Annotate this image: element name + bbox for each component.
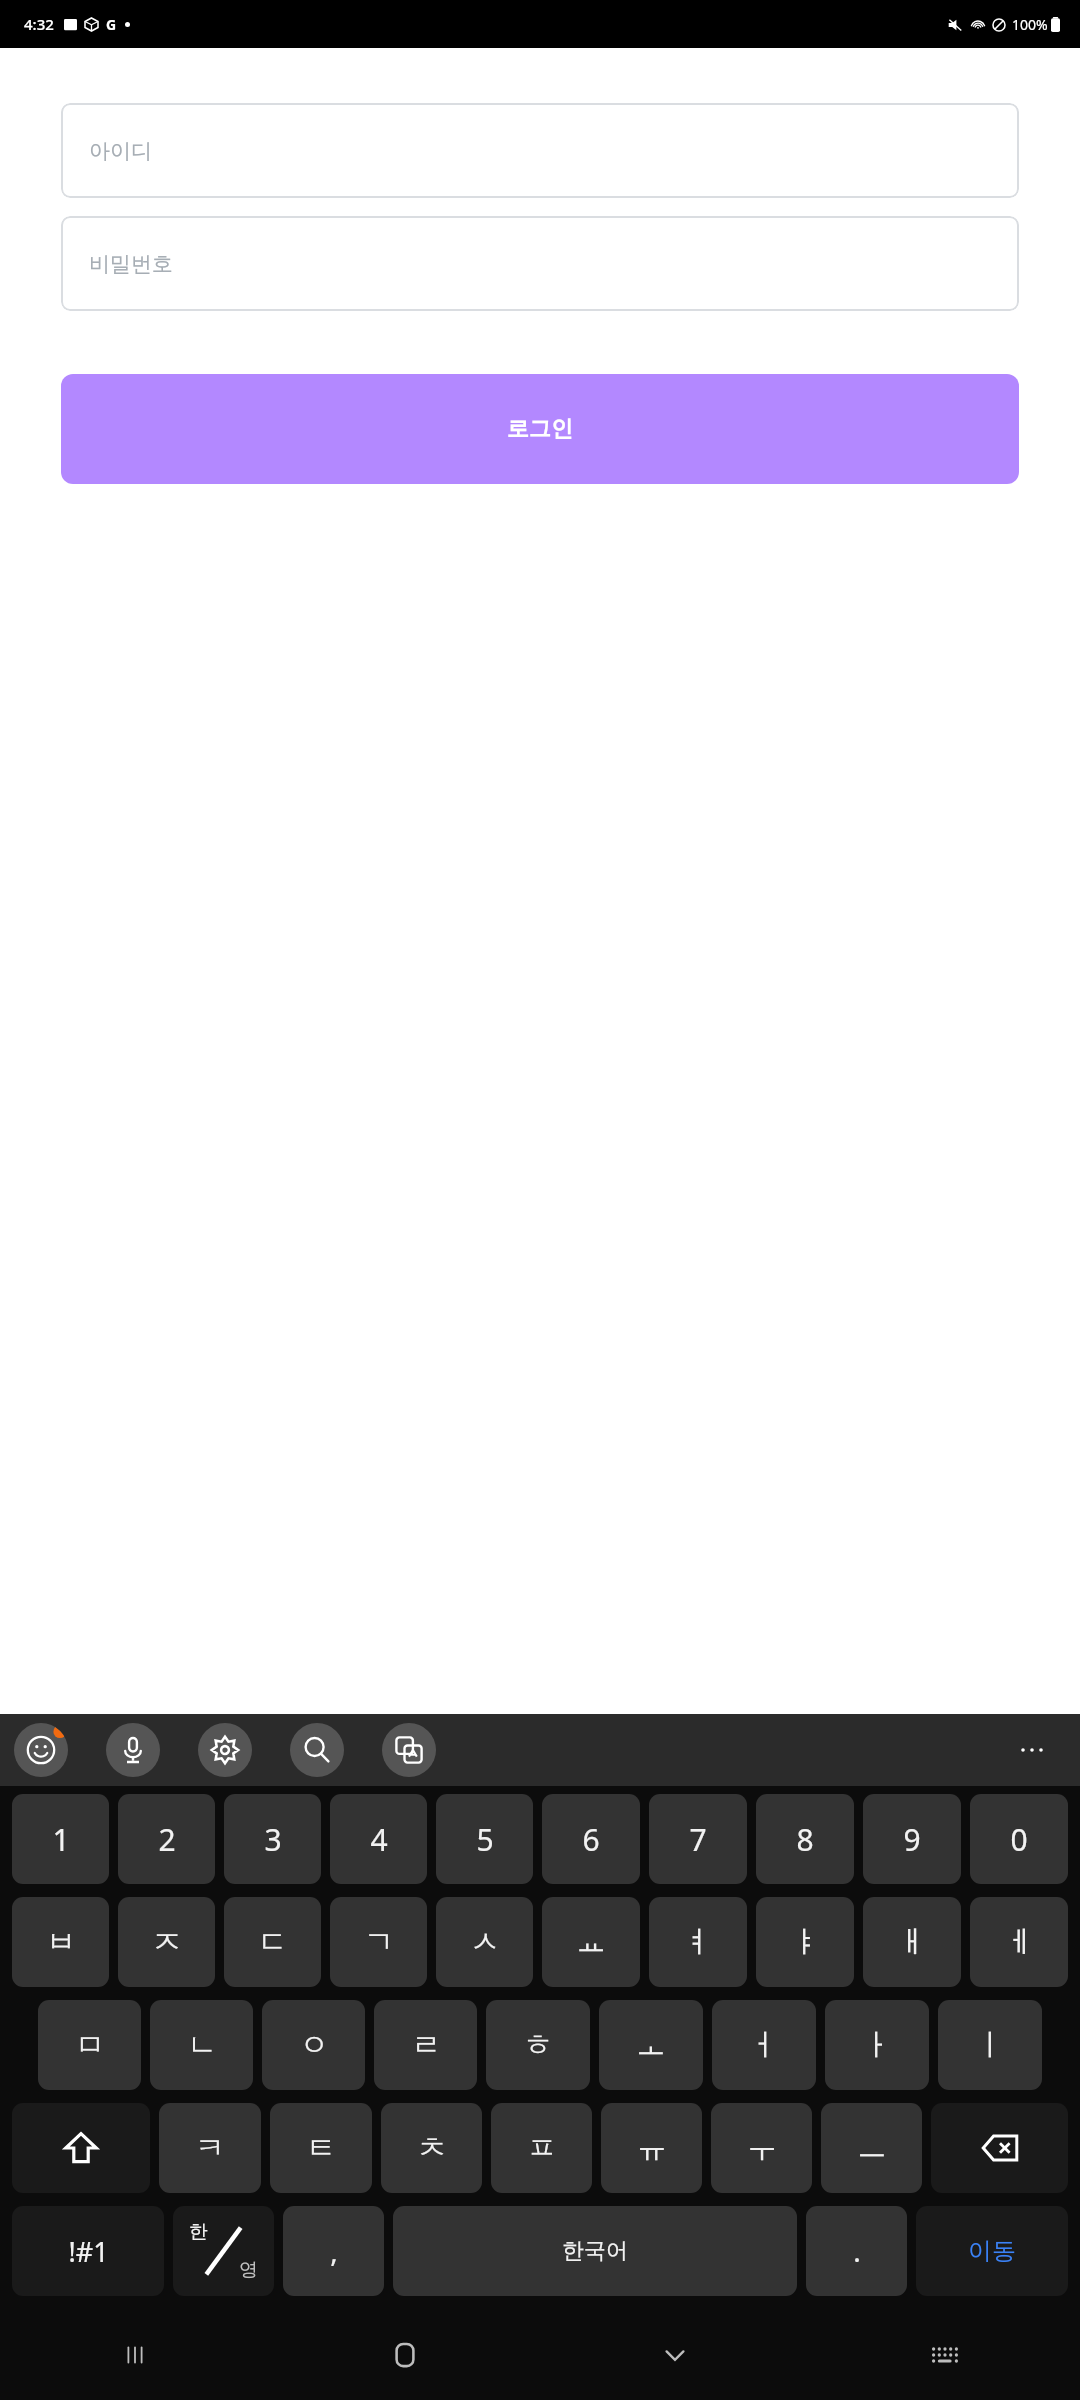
button[interactable]: Emoji	[14, 1723, 68, 1777]
staticText: ,	[330, 2232, 338, 2270]
staticText: 100%	[1012, 15, 1048, 34]
button[interactable]: ㅇ	[262, 2000, 365, 2090]
staticText: ㅏ	[862, 2026, 892, 2064]
button[interactable]: Voice input	[106, 1723, 160, 1777]
staticText: ㅣ	[975, 2026, 1005, 2064]
button[interactable]: 로그인	[61, 374, 1019, 484]
button[interactable]: 한국어	[393, 2206, 797, 2296]
staticText: ㅂ	[46, 1923, 76, 1961]
staticText: ㅓ	[749, 2026, 779, 2064]
button[interactable]: Shift	[12, 2103, 150, 2193]
button[interactable]: ㄷ	[224, 1897, 321, 1987]
button[interactable]: ㅌ	[270, 2103, 372, 2193]
staticText: ㅇ	[299, 2026, 329, 2064]
button[interactable]: 이동	[916, 2206, 1068, 2296]
staticText: !#1	[68, 2233, 109, 2270]
button[interactable]: ㅈ	[118, 1897, 215, 1987]
staticText: ㅋ	[195, 2129, 225, 2167]
staticText: 4:32	[24, 14, 54, 34]
staticText: 한국어	[562, 2237, 628, 2265]
staticText: 5	[476, 1819, 494, 1860]
button[interactable]: 9	[863, 1794, 961, 1884]
staticText: 0	[1010, 1819, 1028, 1860]
staticText: 6	[582, 1819, 600, 1860]
staticText: 한	[189, 2220, 208, 2244]
button[interactable]: ㅎ	[486, 2000, 590, 2090]
button[interactable]: 5	[436, 1794, 533, 1884]
button[interactable]: ㅊ	[381, 2103, 482, 2193]
staticText: ㄱ	[364, 1923, 394, 1961]
button[interactable]: ㄱ	[330, 1897, 427, 1987]
button[interactable]: 8	[756, 1794, 854, 1884]
button[interactable]: ㅣ	[938, 2000, 1042, 2090]
staticText: ㅁ	[75, 2026, 105, 2064]
staticText: ㅛ	[576, 1923, 606, 1961]
button[interactable]: .	[806, 2206, 907, 2296]
button[interactable]: Backspace	[931, 2103, 1068, 2193]
button[interactable]: 1	[12, 1794, 109, 1884]
button[interactable]: Hide keyboard	[540, 2310, 810, 2400]
button[interactable]: ㅂ	[12, 1897, 109, 1987]
staticText: 영	[239, 2258, 258, 2282]
staticText: ㅅ	[470, 1923, 500, 1961]
staticText: ㅌ	[306, 2129, 336, 2167]
staticText: 4	[370, 1819, 388, 1860]
button[interactable]: ,	[283, 2206, 384, 2296]
button[interactable]: Recents	[0, 2310, 270, 2400]
button[interactable]: !#1	[12, 2206, 164, 2296]
button[interactable]: ㅛ	[542, 1897, 640, 1987]
button[interactable]: Translate	[382, 1723, 436, 1777]
staticText: 9	[903, 1819, 921, 1860]
button[interactable]: 비밀번호	[61, 216, 1019, 311]
staticText: ㅐ	[897, 1923, 927, 1961]
staticText: ㄹ	[411, 2026, 441, 2064]
staticText: 2	[158, 1819, 176, 1860]
button[interactable]: More options	[1008, 1726, 1056, 1774]
button[interactable]: ㅓ	[712, 2000, 816, 2090]
button[interactable]: ㅏ	[825, 2000, 929, 2090]
button[interactable]: ㅡ	[821, 2103, 922, 2193]
button[interactable]: ㅑ	[756, 1897, 854, 1987]
button[interactable]: ㅍ	[491, 2103, 592, 2193]
button[interactable]: Settings	[198, 1723, 252, 1777]
staticText: ㅠ	[637, 2129, 667, 2167]
staticText: ㅔ	[1004, 1923, 1034, 1961]
button[interactable]: ㅐ	[863, 1897, 961, 1987]
staticText: ㅈ	[152, 1923, 182, 1961]
staticText: 3	[264, 1819, 282, 1860]
button[interactable]: ㄹ	[374, 2000, 477, 2090]
button[interactable]: 6	[542, 1794, 640, 1884]
button[interactable]: ㅕ	[649, 1897, 747, 1987]
button[interactable]: 4	[330, 1794, 427, 1884]
button[interactable]: ㅁ	[38, 2000, 141, 2090]
button[interactable]: ㄴ	[150, 2000, 253, 2090]
button[interactable]: Home	[270, 2310, 540, 2400]
button[interactable]: ㅔ	[970, 1897, 1068, 1987]
staticText: ㅎ	[523, 2026, 553, 2064]
staticText: G	[106, 15, 117, 34]
button[interactable]: 0	[970, 1794, 1068, 1884]
button[interactable]: ㅋ	[159, 2103, 261, 2193]
button[interactable]: 2	[118, 1794, 215, 1884]
staticText: ㄷ	[258, 1923, 288, 1961]
staticText: 1	[52, 1819, 70, 1860]
button[interactable]: 아이디	[61, 103, 1019, 198]
staticText: .	[853, 2232, 861, 2270]
staticText: 아이디	[89, 138, 152, 164]
button[interactable]: 7	[649, 1794, 747, 1884]
staticText: ㄴ	[187, 2026, 217, 2064]
staticText: ㅜ	[747, 2129, 777, 2167]
staticText: 7	[689, 1819, 707, 1860]
staticText: 이동	[968, 2236, 1016, 2266]
button[interactable]: Search	[290, 1723, 344, 1777]
button[interactable]: ㅜ	[711, 2103, 812, 2193]
button[interactable]: ㅅ	[436, 1897, 533, 1987]
button[interactable]: ㅠ	[601, 2103, 702, 2193]
staticText: ㅕ	[683, 1923, 713, 1961]
button[interactable]: Korean English toggle	[173, 2206, 274, 2296]
button[interactable]: 3	[224, 1794, 321, 1884]
staticText: ㅊ	[417, 2129, 447, 2167]
button[interactable]: ㅗ	[599, 2000, 703, 2090]
button[interactable]: Switch keyboard	[810, 2310, 1080, 2400]
staticText: ㅍ	[527, 2129, 557, 2167]
